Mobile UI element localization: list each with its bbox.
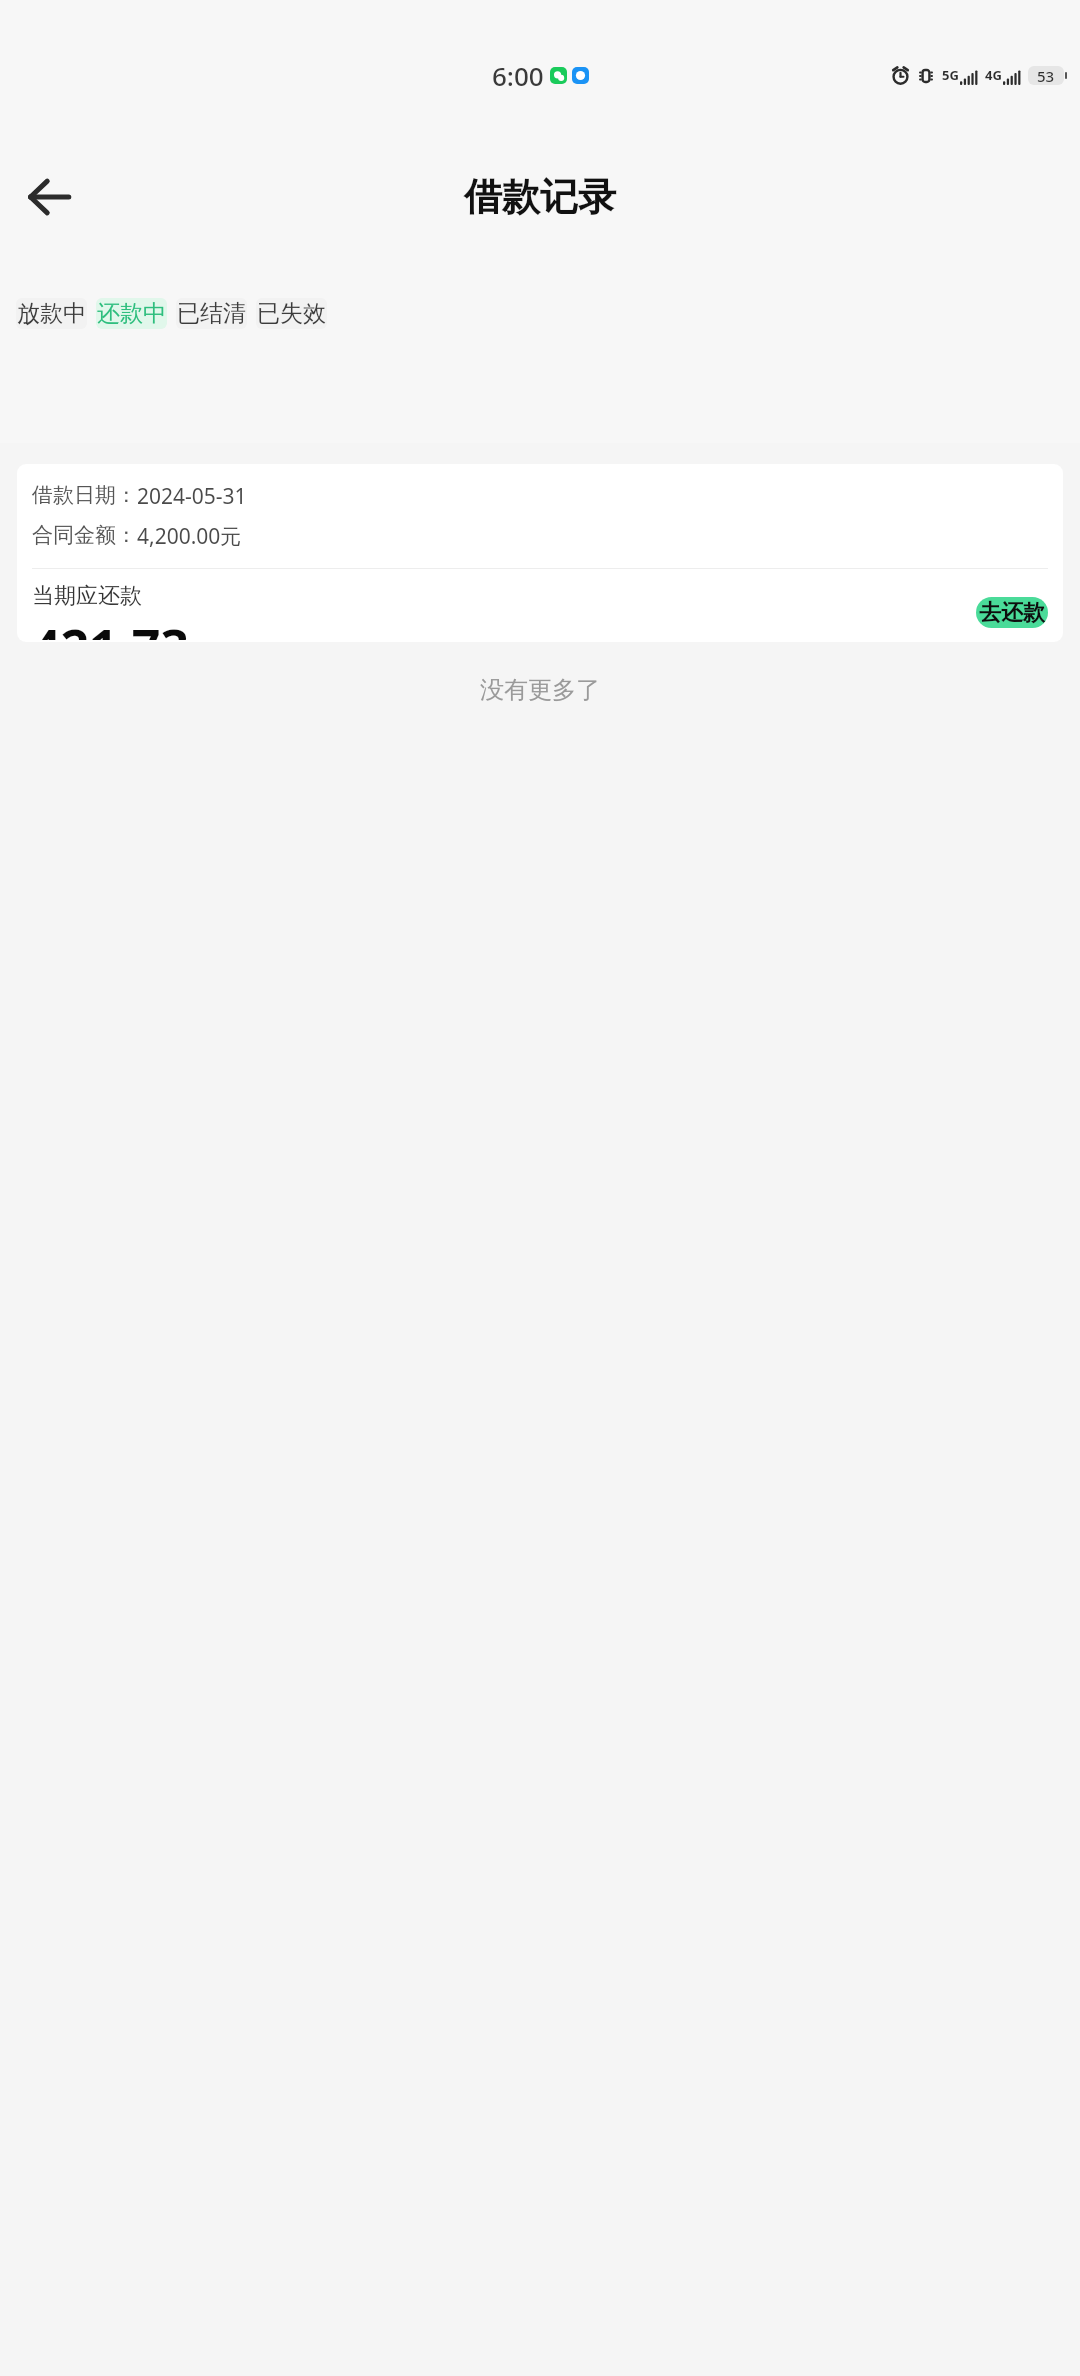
- staticText: 借款记录: [464, 173, 616, 221]
- button[interactable]: 去还款: [976, 597, 1048, 628]
- button[interactable]: 放款中: [16, 298, 87, 329]
- staticText: 421.73: [32, 613, 190, 640]
- staticText: 5G: [942, 66, 959, 84]
- staticText: 合同金额：: [32, 522, 137, 548]
- staticText: 4G: [985, 66, 1002, 84]
- staticText: 当期应还款: [32, 582, 142, 610]
- staticText: 4,200.00元: [137, 522, 242, 551]
- button[interactable]: 已结清: [176, 298, 247, 329]
- button[interactable]: 还款中: [96, 298, 167, 329]
- button[interactable]: Back: [12, 160, 86, 234]
- staticText: 去还款: [979, 599, 1045, 627]
- staticText: 2024-05-31: [137, 482, 247, 511]
- staticText: 还款中: [97, 299, 166, 328]
- staticText: 已失效: [257, 299, 326, 328]
- staticText: 借款日期：: [32, 482, 137, 508]
- staticText: 没有更多了: [0, 675, 1080, 705]
- staticText: 已结清: [177, 299, 246, 328]
- staticText: 6:00: [492, 58, 544, 93]
- staticText: 53: [1037, 66, 1055, 85]
- staticText: 放款中: [17, 299, 86, 328]
- button[interactable]: 借款日期：: [17, 464, 1063, 642]
- button[interactable]: 已失效: [256, 298, 327, 329]
